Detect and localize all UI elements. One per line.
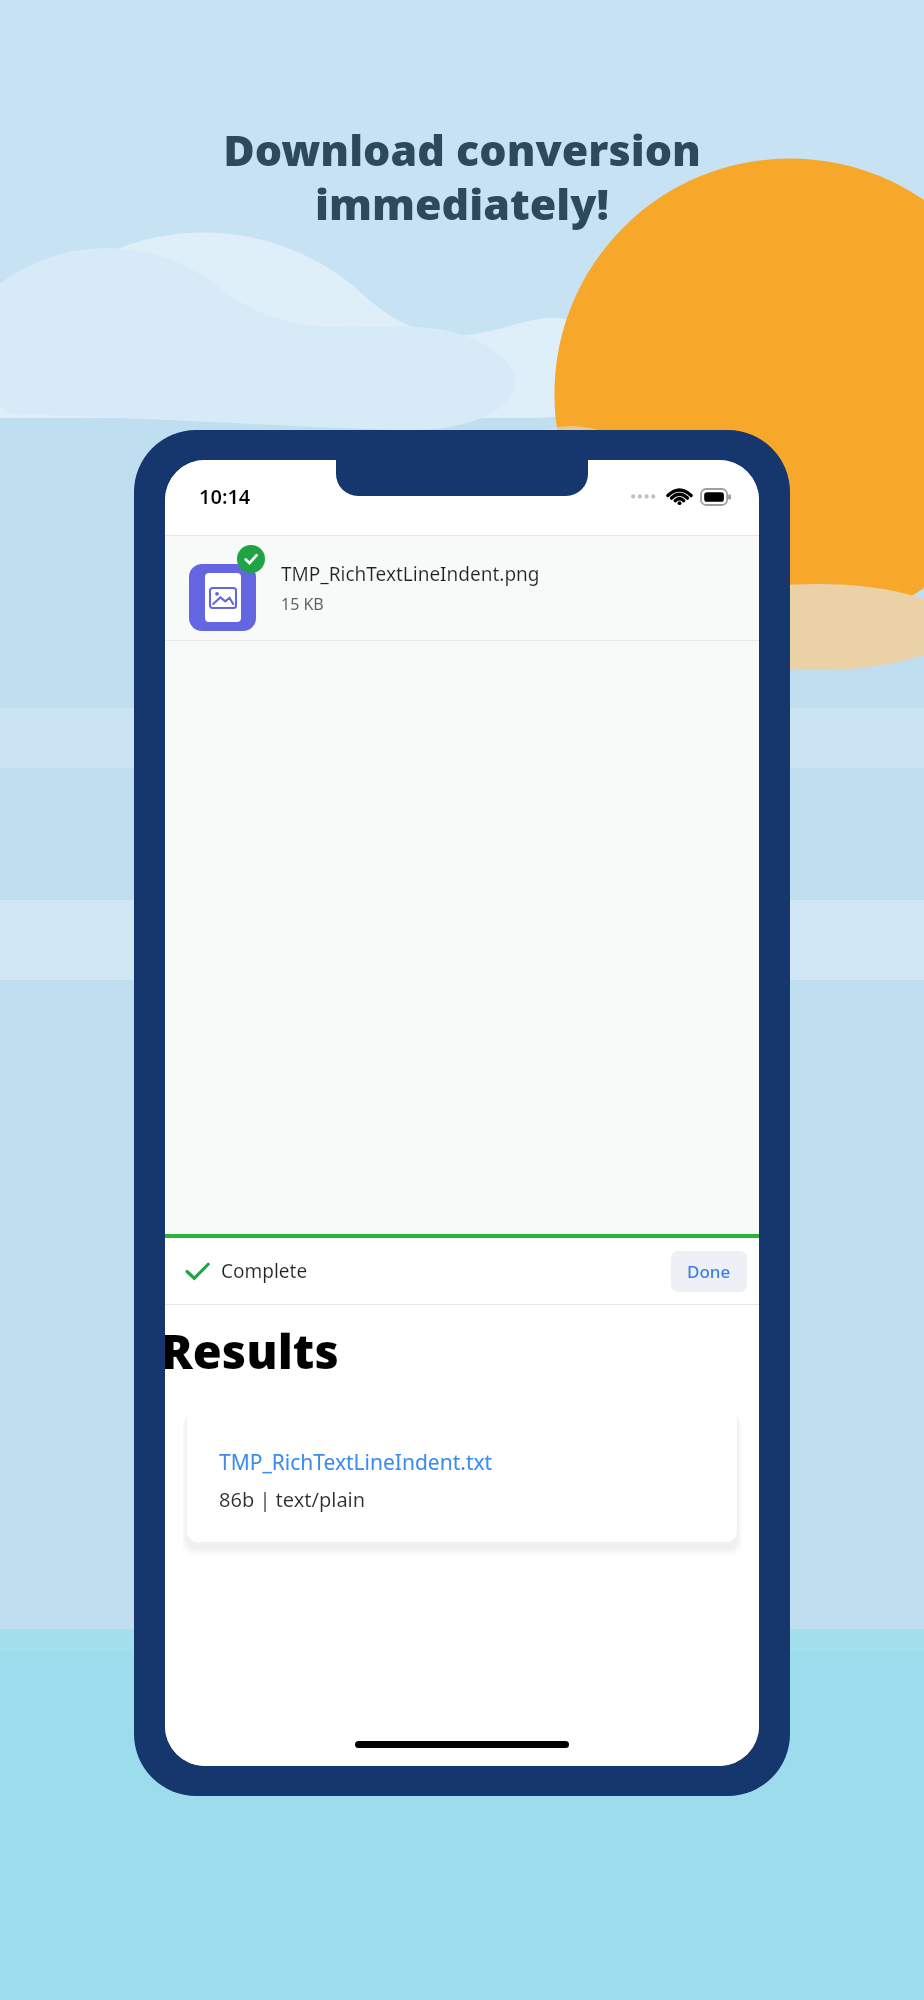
button[interactable]: TMP_RichTextLineIndent.txt xyxy=(187,1410,737,1542)
staticText: Complete xyxy=(221,1258,308,1284)
staticText: TMP_RichTextLineIndent.png xyxy=(281,561,540,587)
staticText: 15 KB xyxy=(281,593,324,615)
button[interactable]: Home xyxy=(355,1741,569,1748)
staticText: 86b | text/plain xyxy=(219,1486,366,1513)
button[interactable]: TMP_RichTextLineIndent.png xyxy=(165,536,759,640)
staticText: Download conversion immediately! xyxy=(223,120,701,233)
staticText: Done xyxy=(687,1260,731,1283)
staticText: 10:14 xyxy=(199,483,251,510)
button[interactable]: Done xyxy=(671,1251,747,1292)
staticText: TMP_RichTextLineIndent.txt xyxy=(219,1448,493,1477)
staticText: Results xyxy=(165,1319,339,1383)
